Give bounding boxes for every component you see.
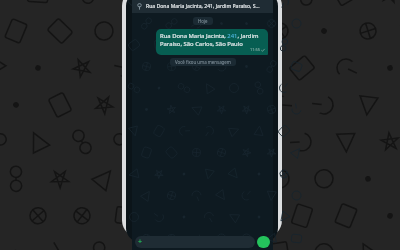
- staticText: Rua Dona Maria Jacinta, 241, Jardim Para…: [146, 3, 260, 10]
- staticText: Rua Dona Maria Jacinta, 241, Jardim Para…: [160, 32, 265, 48]
- button[interactable]: Hoje: [193, 17, 213, 25]
- button[interactable]: Pinned message: [132, 0, 273, 13]
- button[interactable]: Send message: [257, 236, 270, 248]
- other: Pinned message: [136, 3, 143, 10]
- staticText: Você fixou uma mensagem: [175, 59, 231, 65]
- staticText: Hoje: [198, 18, 208, 24]
- staticText: +: [138, 237, 143, 247]
- button[interactable]: +: [135, 236, 255, 248]
- button[interactable]: Você fixou uma mensagem: [170, 58, 236, 66]
- staticText: 11:55: [250, 47, 260, 52]
- button[interactable]: Rua Dona Maria Jacinta, 241, Jardim Para…: [156, 29, 268, 55]
